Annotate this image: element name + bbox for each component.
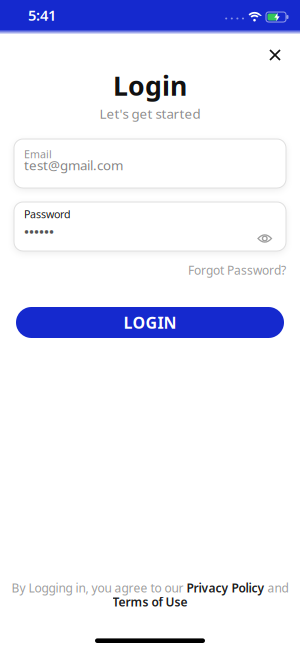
staticText: Password: [24, 207, 71, 221]
staticText: Forgot Password?: [188, 262, 286, 278]
staticText: Privacy Policy: [186, 580, 264, 596]
staticText: 5:41: [28, 5, 56, 25]
staticText: Email: [24, 147, 52, 161]
button[interactable]: Show password: [252, 228, 277, 249]
staticText: Login: [113, 68, 187, 103]
staticText: LOGIN: [123, 312, 176, 333]
button[interactable]: Forgot Password?: [188, 263, 286, 276]
staticText: By Logging in, you agree to our: [11, 580, 186, 596]
button[interactable]: Password: [14, 202, 286, 251]
staticText: Terms of Use: [112, 594, 187, 610]
staticText: and: [264, 580, 288, 596]
staticText: ••••••: [24, 223, 54, 240]
button[interactable]: Terms of Use: [112, 594, 187, 610]
button[interactable]: Privacy Policy: [186, 580, 264, 596]
staticText: test@gmail.com: [24, 156, 123, 174]
button[interactable]: Email: [14, 139, 286, 188]
staticText: Let's get started: [99, 105, 200, 122]
button[interactable]: Close: [266, 46, 284, 64]
button[interactable]: LOGIN: [16, 307, 284, 338]
